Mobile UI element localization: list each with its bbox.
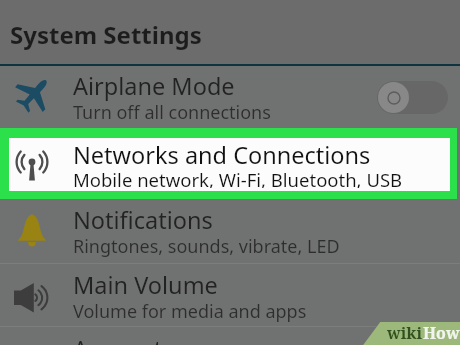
staticText: Notifications xyxy=(73,204,213,236)
staticText: Mobile network, Wi-Fi, Bluetooth, USB xyxy=(73,167,403,188)
staticText: Accounts xyxy=(73,333,174,345)
staticText: Main Volume xyxy=(73,269,218,301)
button[interactable]: Airplane mode toggle xyxy=(377,81,448,114)
button[interactable]: Networks and Connections xyxy=(9,138,450,191)
staticText: Volume for media and apps xyxy=(73,299,307,324)
button[interactable]: Notifications xyxy=(0,199,460,263)
staticText: Airplane Mode xyxy=(73,70,235,102)
staticText: Turn off all connections xyxy=(73,100,271,125)
button[interactable]: Main Volume xyxy=(0,264,460,326)
button[interactable]: Airplane Mode xyxy=(0,66,460,128)
staticText: System Settings xyxy=(10,18,202,51)
button[interactable]: Accounts xyxy=(0,327,460,345)
staticText: How xyxy=(423,322,460,341)
staticText: wiki xyxy=(387,322,423,341)
staticText: Ringtones, sounds, vibrate, LED xyxy=(73,234,340,259)
staticText: Networks and Connections xyxy=(73,139,371,171)
